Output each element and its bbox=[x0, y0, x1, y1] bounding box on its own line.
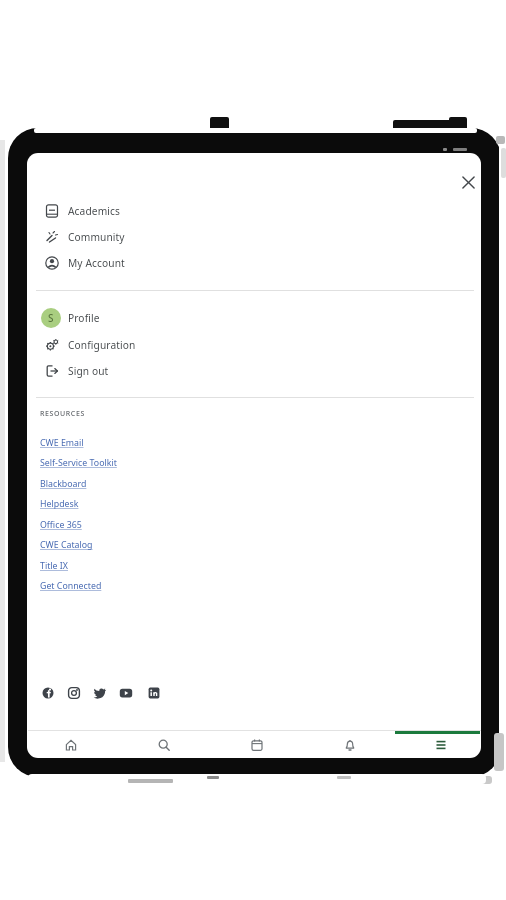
staticText: Blackboard bbox=[40, 478, 87, 490]
staticText: Profile bbox=[68, 311, 100, 325]
button[interactable]: Academics bbox=[36, 198, 474, 224]
button[interactable] bbox=[401, 732, 480, 758]
button[interactable] bbox=[66, 685, 82, 701]
button[interactable]: Community bbox=[36, 224, 474, 250]
staticText: Configuration bbox=[68, 338, 136, 352]
staticText: Sign out bbox=[68, 364, 109, 378]
staticText: Helpdesk bbox=[40, 498, 79, 510]
button[interactable]: Get Connected bbox=[40, 578, 102, 594]
staticText: S bbox=[48, 311, 54, 325]
button[interactable] bbox=[40, 685, 56, 701]
button[interactable]: CWE Email bbox=[40, 435, 84, 451]
button[interactable]: Sign out bbox=[36, 358, 474, 384]
button[interactable] bbox=[25, 732, 116, 758]
staticText: Get Connected bbox=[40, 580, 102, 592]
button[interactable] bbox=[304, 732, 395, 758]
button[interactable] bbox=[457, 171, 480, 194]
button[interactable] bbox=[211, 732, 302, 758]
button[interactable]: Title IX bbox=[40, 558, 68, 574]
button[interactable]: Configuration bbox=[36, 332, 474, 358]
staticText: Office 365 bbox=[40, 519, 82, 531]
button[interactable]: Office 365 bbox=[40, 517, 82, 533]
button[interactable] bbox=[118, 732, 209, 758]
button[interactable]: Self-Service Toolkit bbox=[40, 455, 117, 471]
staticText: Self-Service Toolkit bbox=[40, 457, 117, 469]
button[interactable]: Blackboard bbox=[40, 476, 87, 492]
staticText: CWE Email bbox=[40, 437, 84, 449]
staticText: My Account bbox=[68, 256, 125, 270]
button[interactable] bbox=[92, 685, 108, 701]
staticText: CWE Catalog bbox=[40, 539, 93, 551]
button[interactable]: CWE Catalog bbox=[40, 537, 93, 553]
staticText: Community bbox=[68, 230, 125, 244]
staticText: Academics bbox=[68, 204, 120, 218]
button[interactable] bbox=[146, 685, 162, 701]
button[interactable]: S bbox=[36, 305, 474, 331]
staticText: Title IX bbox=[40, 560, 68, 572]
button[interactable] bbox=[118, 685, 134, 701]
button[interactable]: My Account bbox=[36, 250, 474, 276]
button[interactable]: Helpdesk bbox=[40, 496, 79, 512]
staticText: RESOURCES bbox=[40, 409, 85, 419]
